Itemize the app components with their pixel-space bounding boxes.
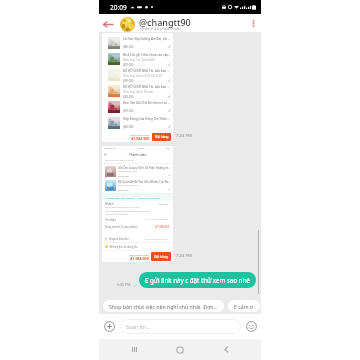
staticText: ₫90.000	[123, 95, 134, 99]
staticText: 7:24 PM	[176, 133, 192, 139]
staticText: ›	[169, 245, 170, 249]
button[interactable]: Back	[101, 17, 115, 31]
button[interactable]: Shop bận chút việc nên nghỉ chủ nhật Đơn…	[103, 300, 224, 312]
staticText: Nhận Voucher trị giá ₫15.000 nếu đơn hàn…	[105, 210, 150, 213]
staticText: Phương thức vận chuyển | Nhận từ 20-22 n…	[105, 196, 161, 199]
staticText: ₫90.000	[123, 79, 134, 83]
staticText: x1	[168, 45, 171, 49]
staticText: ₫1.084.900	[155, 225, 170, 229]
staticText: Shopee Voucher	[109, 237, 129, 241]
staticText: Đặt hàng	[154, 255, 168, 259]
button[interactable]: Back	[215, 339, 237, 360]
staticText: ₫334.900	[118, 188, 129, 191]
button[interactable]: Add attachment	[103, 320, 116, 333]
staticText: Lưu ý cho Người Bán...	[145, 218, 170, 221]
button[interactable]: E gửi link này c đặt thử xem sao nhé	[139, 272, 256, 288]
button[interactable]: More options	[247, 17, 259, 29]
staticText: BỘ ĐỒ CHƠI NHÀ PLL bán bao ngủ 0/1 em...	[123, 85, 171, 89]
staticText: Nhận hàng vào 20 Th09 - 22 Th09	[105, 206, 140, 209]
button[interactable]: Soạn tin...	[120, 319, 241, 334]
staticText: 6:05 PM	[117, 282, 131, 287]
staticText: ₫84.000	[123, 125, 134, 129]
staticText: Bao Tiên Gối Chữ Bé cho mẹ và Baby 400..…	[123, 101, 171, 105]
staticText: ₫750.000	[118, 174, 129, 177]
staticText: ₫95.000	[123, 109, 134, 113]
staticText: ₫70.000	[123, 63, 134, 67]
button[interactable]: Profile picture	[120, 17, 135, 32]
staticText: x1	[168, 109, 171, 113]
button[interactable]: E cảm ơ	[228, 300, 260, 312]
staticText: x1	[168, 174, 171, 177]
staticText: Tổng số tiền (2 sản phẩm)	[105, 225, 138, 229]
staticText: Bộ 4 Cốc gỗ 1 thìa nhựa cao cấp an toàn …	[123, 53, 171, 57]
staticText: BỘ ĐỒ CHƠI NHÀ PLL bán bao ngủ 0/1 em...	[123, 69, 171, 73]
button[interactable]: Emoji	[245, 320, 258, 333]
staticText: E gửi link này c đặt thử xem sao nhé	[145, 276, 250, 284]
staticText: ₫1.084.900	[131, 136, 150, 141]
button[interactable]: ıl Viettel 4G	[102, 146, 173, 262]
staticText: Hộp Đựng Quà Hồng Tím Thần Kỳ Thế Kỷ...	[123, 117, 171, 121]
staticText: 7:24 PM	[176, 253, 192, 259]
staticText: Nhanh	[105, 202, 114, 206]
staticText: Phân Loại: Xanh cỡ 30, Đỏ cỡ 40	[123, 74, 162, 78]
staticText: Phân Loại: Trà, Xanh lá Đỏ	[123, 58, 155, 62]
staticText: Phân Loại: Sơ Tha	[118, 170, 138, 173]
staticText: ₫85.000	[123, 45, 134, 49]
staticText: x1	[168, 79, 171, 83]
staticText: ₫64.700 ›	[159, 202, 170, 205]
staticText: Gối Ôm Luxury Kích Cỡ Hiện Hoàng cho L..…	[118, 166, 171, 170]
staticText: x1	[168, 95, 171, 99]
staticText: 67%	[166, 147, 171, 150]
staticText: Đặt hàng	[155, 135, 169, 139]
staticText: Phân Loại: Xanh, Đỏ sẫm	[123, 90, 154, 94]
staticText: Địa chỉ nhận hàng của bạn	[105, 159, 134, 162]
staticText: Tin nhắn	[105, 218, 117, 222]
staticText: x1	[168, 125, 171, 129]
staticText: giao sau thời gian trên.	[105, 213, 129, 216]
staticText: Shop bận chút việc nên nghỉ chủ nhật Đơn…	[109, 303, 218, 310]
staticText: ₫1.084.900	[130, 256, 149, 261]
button[interactable]: Đặt hàng	[151, 252, 171, 261]
staticText: Soạn tin...	[126, 323, 151, 330]
button[interactable]: Lót Sàn Xốp Dưỡng Ẩm Bạt, Lót Sàn Tấm...	[102, 33, 173, 142]
staticText: Chọn hoặc nhập mã ›	[145, 237, 170, 240]
staticText: 20:09	[110, 3, 127, 12]
staticText: Online 43 phút trước	[140, 26, 181, 32]
staticText: Tổng thanh toán	[129, 253, 149, 256]
staticText: Lót Sàn Xốp Dưỡng Ẩm Bạt, Lót Sàn Tấm...	[123, 37, 171, 41]
button[interactable]: Home	[169, 339, 191, 360]
staticText: E cảm ơ	[234, 303, 254, 310]
staticText: @changtt90	[139, 16, 191, 28]
staticText: Tổng thanh toán	[130, 133, 150, 136]
staticText: ıl Viettel 4G	[104, 147, 116, 150]
staticText: Không thể sử dụng Xu	[110, 245, 138, 249]
staticText: Bộ Quần Áo Bé Trai Siêu Nhiên Cực Đẹp, H…	[118, 180, 171, 184]
button[interactable]: Đặt hàng	[152, 133, 171, 141]
button[interactable]: Recents	[123, 339, 145, 360]
staticText: Thanh toán	[129, 153, 147, 157]
staticText: x1	[168, 63, 171, 67]
staticText: Phân Loại: bé trai 3t	[118, 184, 140, 187]
staticText: 19:22	[138, 147, 144, 150]
staticText: x1	[168, 188, 171, 191]
